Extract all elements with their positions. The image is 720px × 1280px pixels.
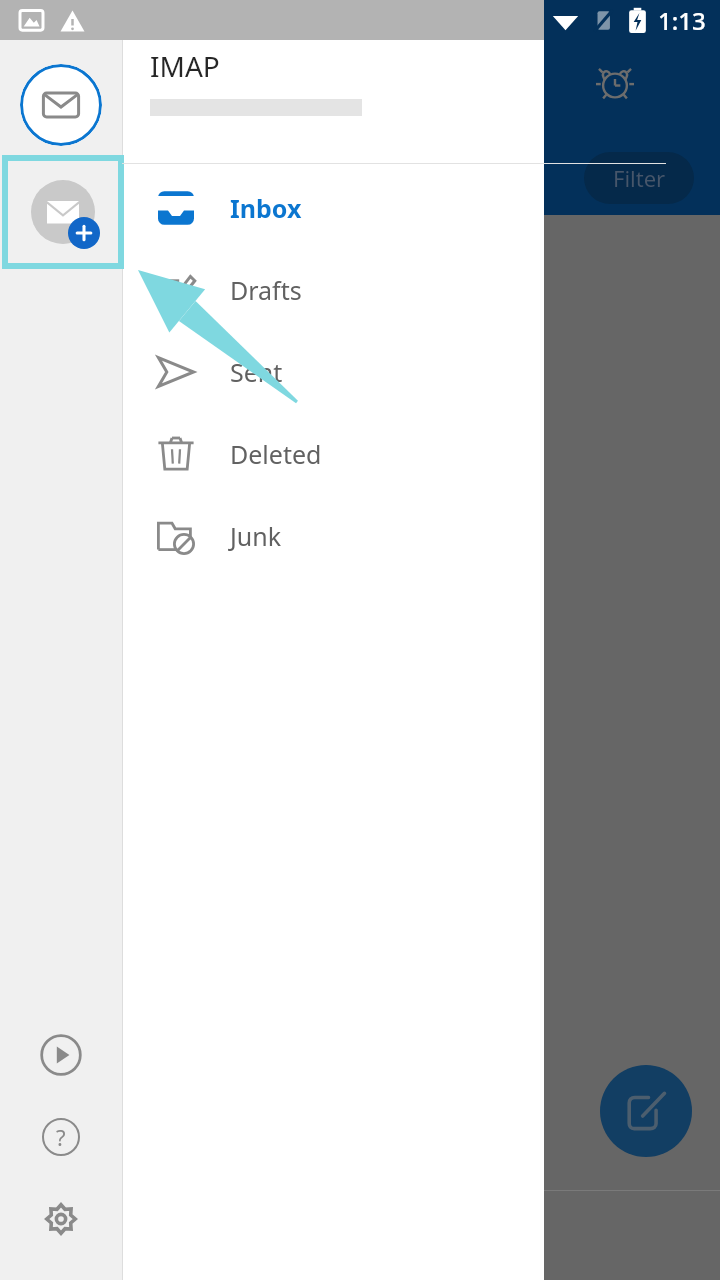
button[interactable]: Settings [37, 1195, 85, 1243]
button[interactable]: Inbox [122, 167, 666, 249]
button[interactable]: Deleted [122, 413, 666, 495]
staticText: Drafts [230, 273, 302, 307]
staticText: 1:13 [658, 4, 706, 37]
button[interactable]: Drafts [122, 249, 666, 331]
button[interactable]: Help [37, 1113, 85, 1161]
button[interactable]: Add account [8, 161, 118, 263]
staticText: Sent [230, 355, 283, 389]
staticText: Filter [613, 163, 666, 193]
button[interactable]: Sent [122, 331, 666, 413]
staticText: IMAP [150, 47, 220, 85]
button[interactable]: Junk [122, 495, 666, 577]
button[interactable]: IMAP account [20, 64, 102, 146]
staticText: Junk [230, 519, 282, 553]
button[interactable]: Snooze [586, 53, 644, 111]
staticText: ? [56, 1122, 66, 1152]
button[interactable]: Compose [600, 1065, 692, 1157]
staticText: Inbox [230, 191, 302, 225]
button[interactable]: Filter [584, 152, 694, 204]
button[interactable]: Play [37, 1031, 85, 1079]
staticText: Deleted [230, 437, 322, 471]
